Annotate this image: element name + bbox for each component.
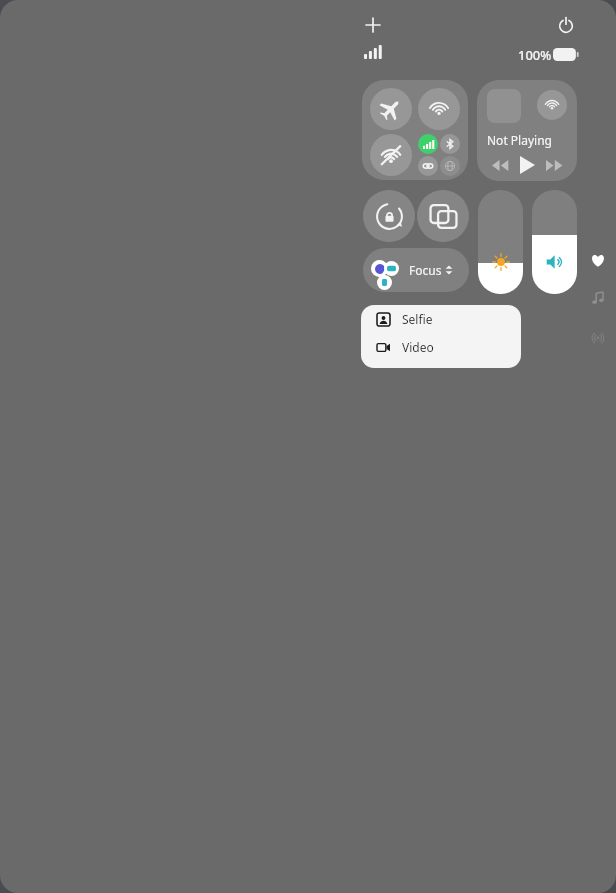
staticText: Not Playing: [487, 132, 552, 148]
button[interactable]: Fast Forward: [543, 154, 565, 176]
staticText: Selfie: [402, 311, 433, 327]
button[interactable]: Power: [553, 12, 579, 38]
button[interactable]: Hearing: [586, 326, 610, 350]
button[interactable]: Music Recognition: [586, 286, 610, 310]
staticText: 100%: [518, 46, 552, 64]
button[interactable]: Focus: [363, 248, 469, 292]
button[interactable]: Video: [361, 333, 521, 361]
staticText: Video: [402, 339, 434, 355]
button[interactable]: Screen Mirroring: [417, 190, 469, 242]
button[interactable]: Play: [514, 152, 540, 178]
button[interactable]: VPN: [440, 156, 460, 176]
button[interactable]: Volume: [532, 190, 577, 294]
button[interactable]: Wi-Fi: [370, 134, 412, 176]
button[interactable]: Selfie: [361, 305, 521, 333]
button[interactable]: Airplane Mode: [370, 88, 412, 130]
button[interactable]: AirPlay: [537, 90, 567, 120]
button[interactable]: AirDrop: [418, 88, 460, 130]
button[interactable]: Brightness: [478, 190, 523, 294]
button[interactable]: Rotation Lock: [363, 190, 415, 242]
button[interactable]: Add control: [360, 12, 386, 38]
button[interactable]: Personal Hotspot: [418, 156, 438, 176]
button[interactable]: Bluetooth: [440, 134, 460, 154]
staticText: Focus: [409, 262, 442, 278]
button[interactable]: Rewind: [489, 154, 511, 176]
button[interactable]: Favorites: [586, 248, 610, 272]
button[interactable]: AirPlay: [477, 80, 577, 181]
button[interactable]: Cellular Data: [418, 134, 438, 154]
